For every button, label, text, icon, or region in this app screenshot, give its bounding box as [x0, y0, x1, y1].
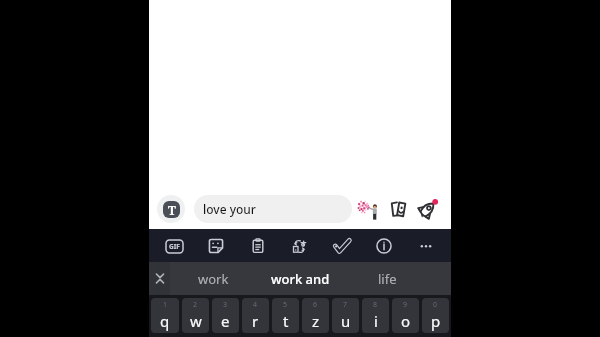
staticText: life — [378, 270, 397, 288]
staticText: 5 — [283, 300, 288, 310]
staticText: w — [190, 311, 202, 331]
staticText: e — [221, 311, 230, 331]
button[interactable]: Clipboard — [244, 232, 272, 260]
staticText: 8 — [373, 300, 378, 310]
staticText: o — [401, 311, 411, 331]
button[interactable]: life — [344, 262, 431, 295]
button[interactable]: 2 — [182, 298, 209, 333]
button[interactable]: Info — [370, 232, 398, 260]
button[interactable]: Stickers — [202, 232, 230, 260]
staticText: work and — [271, 270, 330, 288]
button[interactable]: Text input mode — [157, 195, 185, 223]
button[interactable]: GIF — [160, 232, 188, 260]
button[interactable]: Translate — [285, 232, 313, 260]
button[interactable]: 1 — [151, 298, 179, 333]
staticText: r — [252, 311, 259, 331]
button[interactable]: 9 — [392, 298, 419, 333]
button[interactable]: Grammar check — [328, 232, 356, 260]
button[interactable]: 4 — [242, 298, 269, 333]
staticText: 9 — [403, 300, 408, 310]
staticText: t — [283, 311, 289, 331]
button[interactable]: Rocket — [415, 196, 441, 222]
button[interactable]: work — [170, 262, 257, 295]
button[interactable]: 3 — [212, 298, 239, 333]
button[interactable]: 8 — [362, 298, 389, 333]
button[interactable]: More options — [412, 232, 440, 260]
staticText: 1 — [163, 300, 168, 310]
staticText: 4 — [253, 300, 258, 310]
staticText: 7 — [343, 300, 348, 310]
staticText: GIF — [169, 242, 180, 251]
staticText: p — [431, 311, 441, 331]
staticText: T — [168, 202, 176, 218]
staticText: u — [341, 311, 351, 331]
button[interactable]: work and — [257, 262, 344, 295]
button[interactable]: 5 — [272, 298, 299, 333]
staticText: z — [312, 311, 320, 331]
staticText: 6 — [313, 300, 318, 310]
button[interactable]: 0 — [422, 298, 449, 333]
button[interactable]: Emoji — [355, 196, 381, 222]
staticText: 2 — [193, 300, 198, 310]
button[interactable]: Expand suggestions — [149, 262, 170, 295]
button[interactable]: 6 — [302, 298, 329, 333]
staticText: q — [160, 311, 170, 331]
button[interactable]: Stickers — [385, 196, 411, 222]
staticText: 0 — [433, 300, 438, 310]
staticText: i — [374, 311, 378, 331]
staticText: work — [198, 270, 229, 288]
staticText: 3 — [223, 300, 228, 310]
staticText: love your — [203, 201, 256, 217]
button[interactable]: love your — [194, 195, 352, 223]
button[interactable]: 7 — [332, 298, 359, 333]
